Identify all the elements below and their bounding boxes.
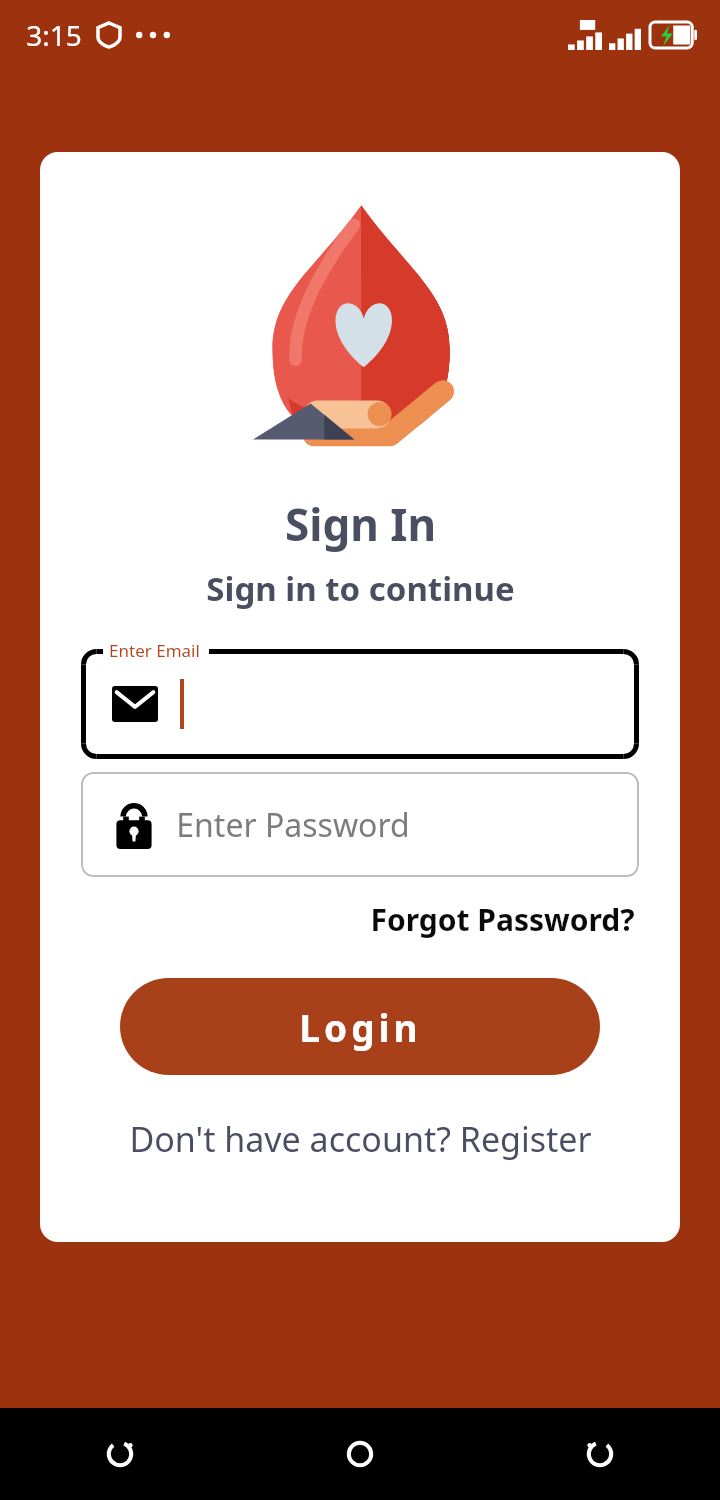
button[interactable]: Back	[480, 1408, 720, 1500]
staticText: Don't have account? Register	[129, 1116, 592, 1162]
button[interactable]: Login	[120, 978, 600, 1075]
button[interactable]: Don't have account? Register	[125, 1112, 596, 1166]
staticText: Enter Password	[176, 803, 410, 847]
staticText: Login	[299, 1002, 422, 1052]
staticText: 3:15	[26, 16, 82, 54]
button[interactable]: Enter Email	[81, 649, 639, 759]
button[interactable]: Forgot Password?	[366, 895, 639, 944]
staticText: Enter Email	[109, 639, 200, 662]
button[interactable]: Home	[240, 1408, 480, 1500]
staticText: Sign In	[285, 494, 436, 554]
button[interactable]: Recent apps	[0, 1408, 240, 1500]
staticText: Sign in to continue	[206, 566, 515, 611]
staticText: Forgot Password?	[370, 899, 635, 940]
button[interactable]: Enter Password	[81, 772, 639, 877]
